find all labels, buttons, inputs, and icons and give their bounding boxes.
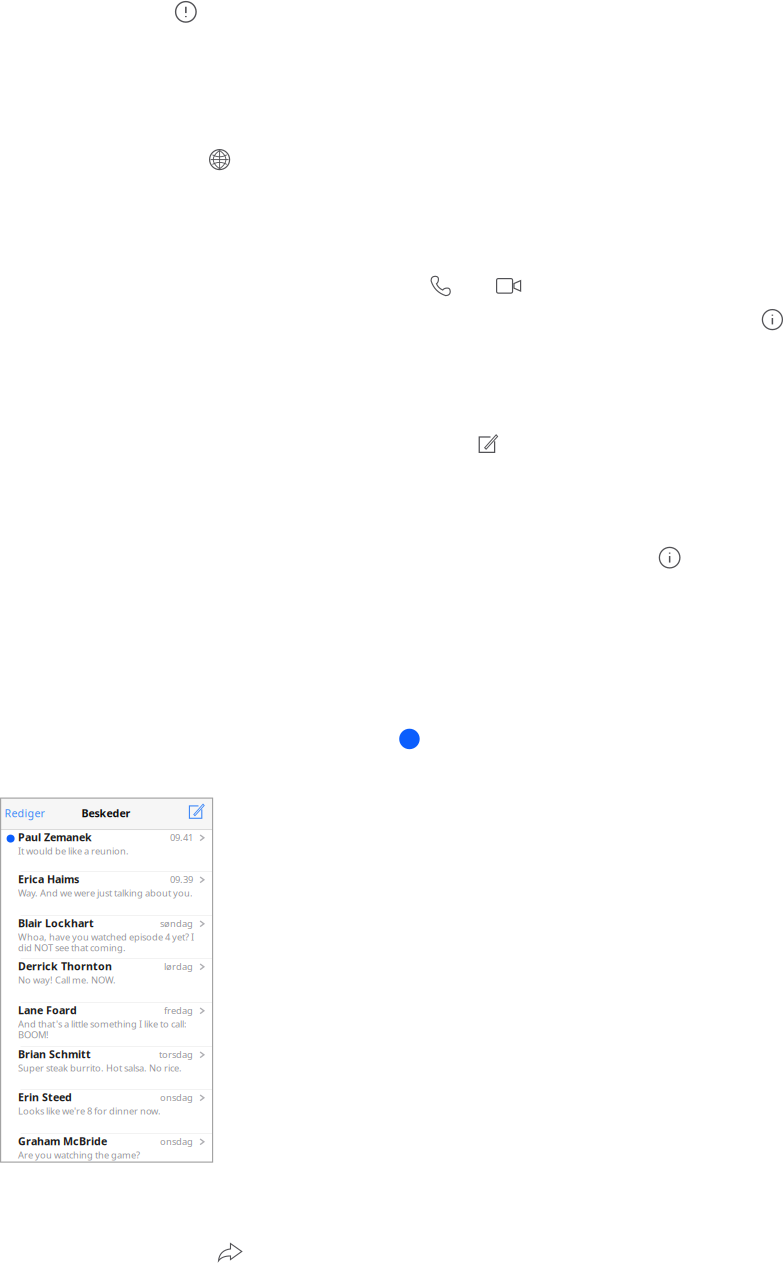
- staticText: did NOT see that coming.: [18, 941, 126, 954]
- button[interactable]: Erin Steed: [1, 1090, 213, 1134]
- staticText: Paul Zemanek: [18, 830, 92, 844]
- button[interactable]: Erica Haims: [1, 872, 213, 916]
- button[interactable]: Blair Lockhart: [1, 916, 213, 959]
- staticText: Way. And we were just talking about you.: [18, 887, 193, 899]
- staticText: No way! Call me. NOW.: [18, 974, 116, 986]
- staticText: 09.41: [170, 831, 193, 843]
- staticText: Derrick Thornton: [18, 959, 112, 973]
- staticText: 09.39: [170, 873, 193, 885]
- staticText: Beskeder: [82, 806, 131, 820]
- button[interactable]: Call: [430, 275, 451, 297]
- staticText: Lane Foard: [18, 1003, 77, 1017]
- staticText: Erin Steed: [18, 1090, 72, 1104]
- button[interactable]: FaceTime video: [497, 279, 521, 293]
- staticText: Super steak burrito. Hot salsa. No rice.: [18, 1062, 182, 1074]
- staticText: Brian Schmitt: [18, 1047, 91, 1061]
- staticText: Are you watching the game?: [18, 1149, 140, 1161]
- button[interactable]: Language: [210, 150, 230, 170]
- button[interactable]: Lane Foard: [1, 1003, 213, 1047]
- button[interactable]: Paul Zemanek: [1, 830, 213, 872]
- staticText: Graham McBride: [18, 1134, 107, 1148]
- staticText: søndag: [160, 917, 193, 929]
- staticText: Erica Haims: [18, 872, 79, 886]
- staticText: Looks like we're 8 for dinner now.: [18, 1105, 161, 1117]
- button[interactable]: Graham McBride: [1, 1134, 213, 1162]
- staticText: fredag: [164, 1004, 193, 1016]
- staticText: lørdag: [164, 960, 193, 972]
- button[interactable]: Compose: [478, 433, 498, 454]
- staticText: BOOM!: [18, 1028, 49, 1041]
- staticText: And that's a little something I like to …: [18, 1018, 187, 1030]
- staticText: Rediger: [5, 806, 45, 820]
- button[interactable]: Share: [218, 1243, 242, 1261]
- button[interactable]: Unread: [399, 729, 420, 749]
- button[interactable]: Warning: [176, 2, 196, 22]
- button[interactable]: Compose: [188, 803, 205, 820]
- button[interactable]: Brian Schmitt: [1, 1047, 213, 1090]
- button[interactable]: Rediger: [5, 806, 45, 820]
- staticText: onsdag: [160, 1091, 193, 1103]
- staticText: It would be like a reunion.: [18, 845, 129, 857]
- button[interactable]: Info: [762, 310, 782, 330]
- staticText: Blair Lockhart: [18, 916, 94, 930]
- staticText: torsdag: [159, 1048, 193, 1060]
- staticText: onsdag: [160, 1135, 193, 1147]
- button[interactable]: Derrick Thornton: [1, 959, 213, 1003]
- button[interactable]: Info: [659, 547, 680, 568]
- staticText: Whoa, have you watched episode 4 yet? I: [18, 931, 194, 943]
